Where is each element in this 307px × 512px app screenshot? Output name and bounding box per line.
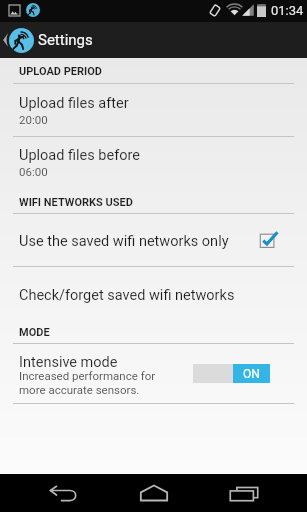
staticText: Intensive mode: [19, 354, 118, 371]
button[interactable]: Recent apps: [198, 474, 290, 512]
staticText: ON: [243, 367, 260, 381]
button[interactable]: [0, 344, 307, 403]
staticText: Check/forget saved wifi networks: [19, 287, 235, 304]
staticText: Increased performance for: [19, 369, 156, 382]
staticText: WIFI NETWORKS USED: [19, 196, 133, 209]
staticText: Settings: [38, 31, 93, 49]
button[interactable]: Back: [18, 474, 110, 512]
staticText: 01:34: [271, 3, 304, 18]
staticText: UPLOAD PERIOD: [19, 65, 103, 78]
staticText: more accurate sensors.: [19, 383, 140, 396]
button[interactable]: Navigate up, Settings: [0, 22, 307, 58]
button[interactable]: [0, 267, 307, 319]
staticText: Use the saved wifi networks only: [19, 233, 229, 250]
button[interactable]: Intensive mode on: [193, 364, 270, 383]
button[interactable]: [0, 84, 307, 136]
button[interactable]: Home: [110, 474, 198, 512]
staticText: 06:00: [19, 165, 48, 178]
staticText: MODE: [19, 326, 50, 339]
staticText: Upload files before: [19, 147, 140, 164]
button[interactable]: [0, 214, 307, 266]
button[interactable]: [0, 137, 307, 189]
staticText: 20:00: [19, 113, 48, 126]
staticText: Upload files after: [19, 95, 129, 112]
